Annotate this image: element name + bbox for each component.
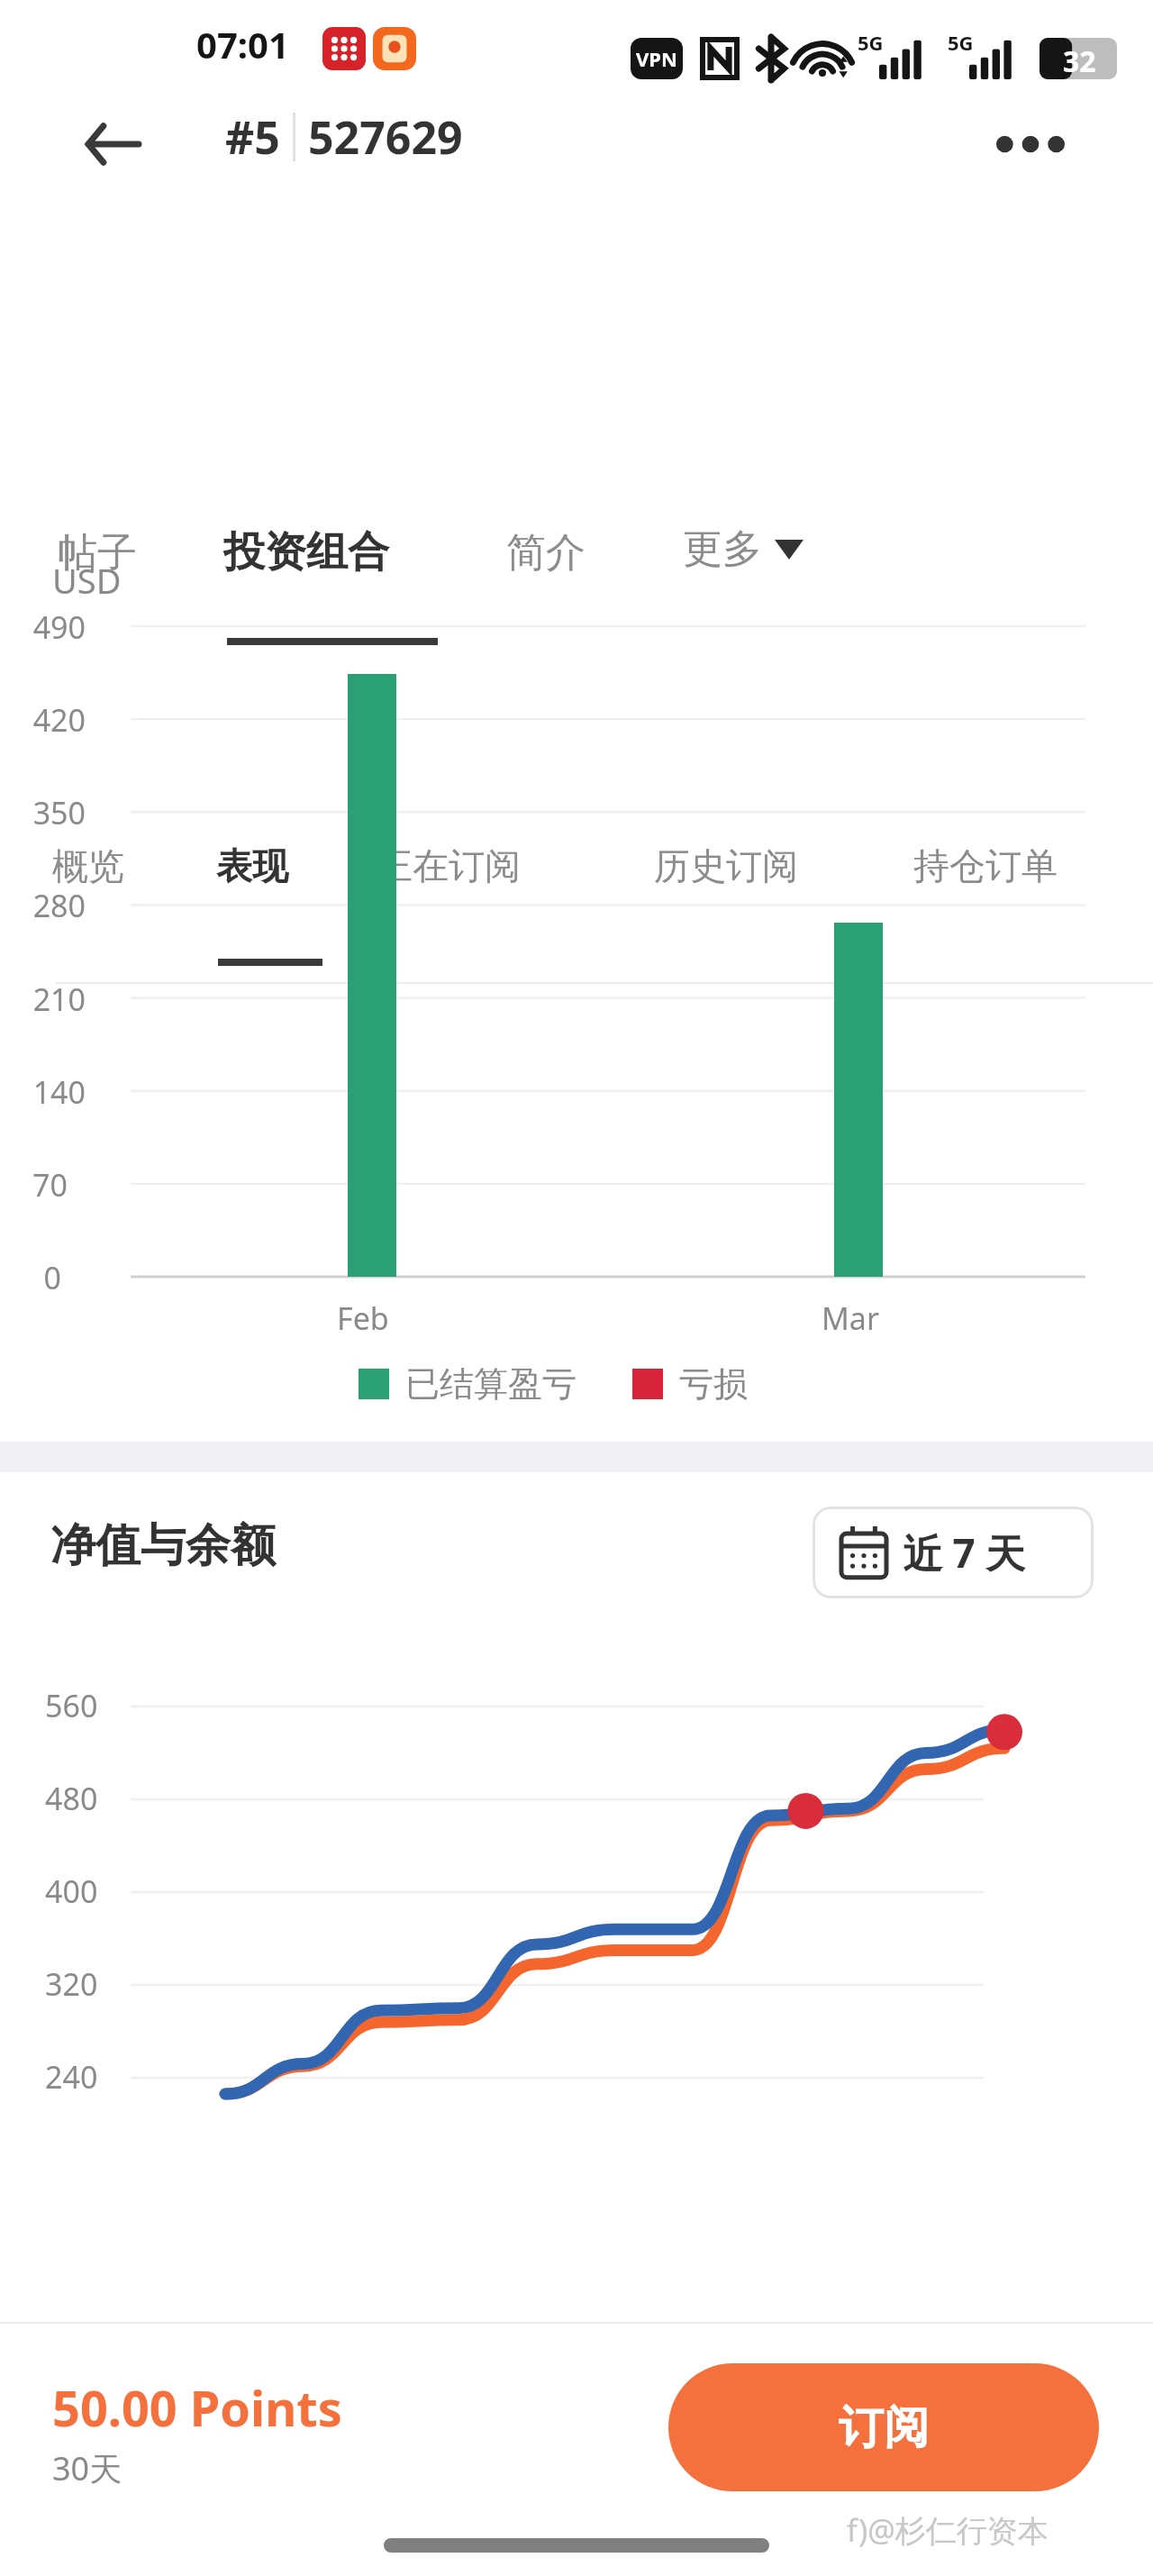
- staticText: 400: [45, 1871, 98, 1912]
- staticText: 50.00 Points: [52, 2374, 342, 2441]
- staticText: 正在订阅: [377, 843, 521, 888]
- staticText: Mar: [822, 1297, 879, 1339]
- staticText: 07:01: [196, 20, 289, 68]
- staticText: 527629: [308, 106, 463, 168]
- staticText: 表现: [216, 843, 288, 888]
- staticText: 持仓订单: [913, 843, 1058, 888]
- button[interactable]: 简介: [506, 528, 586, 578]
- staticText: 420: [32, 699, 86, 741]
- staticText: 32: [1063, 41, 1096, 81]
- staticText: 5G: [948, 29, 974, 56]
- staticText: 近 7 天: [903, 1525, 1026, 1579]
- staticText: VPN: [636, 45, 677, 72]
- staticText: #5: [225, 106, 280, 168]
- button[interactable]: 投资组合: [223, 526, 389, 578]
- staticText: USD: [52, 557, 122, 604]
- staticText: 140: [32, 1071, 86, 1113]
- staticText: 帖子: [58, 528, 137, 578]
- button[interactable]: Back: [70, 101, 157, 187]
- staticText: 简介: [506, 528, 586, 578]
- staticText: 30天: [52, 2446, 123, 2490]
- staticText: 490: [32, 606, 86, 648]
- staticText: 净值与余额: [50, 1517, 276, 1574]
- staticText: 240: [45, 2056, 98, 2098]
- staticText: f)@杉仁行资本: [847, 2509, 1049, 2551]
- staticText: 投资组合: [223, 526, 389, 578]
- staticText: 0: [43, 1257, 61, 1298]
- staticText: 210: [32, 979, 86, 1020]
- button[interactable]: 表现: [216, 843, 288, 888]
- button[interactable]: 近 7 天: [813, 1506, 1094, 1598]
- button[interactable]: 帖子: [58, 528, 137, 578]
- staticText: 已结算盈亏: [405, 1362, 576, 1406]
- staticText: 更多: [683, 524, 762, 574]
- button[interactable]: 概览: [52, 843, 124, 888]
- staticText: 订阅: [839, 2399, 929, 2456]
- staticText: 320: [45, 1963, 98, 2005]
- button[interactable]: 正在订阅: [377, 843, 521, 888]
- staticText: 350: [32, 792, 86, 833]
- staticText: 历史订阅: [654, 843, 798, 888]
- button[interactable]: 持仓订单: [913, 843, 1058, 888]
- staticText: Feb: [337, 1297, 389, 1339]
- staticText: 概览: [52, 843, 124, 888]
- staticText: 亏损: [679, 1362, 748, 1406]
- button[interactable]: 更多: [683, 524, 803, 574]
- button[interactable]: More options: [980, 101, 1081, 187]
- button[interactable]: 历史订阅: [654, 843, 798, 888]
- staticText: 480: [45, 1778, 98, 1819]
- button[interactable]: 订阅: [668, 2363, 1099, 2491]
- staticText: 5G: [858, 29, 884, 56]
- staticText: 70: [32, 1164, 68, 1206]
- staticText: 560: [45, 1685, 98, 1726]
- staticText: 280: [32, 885, 86, 926]
